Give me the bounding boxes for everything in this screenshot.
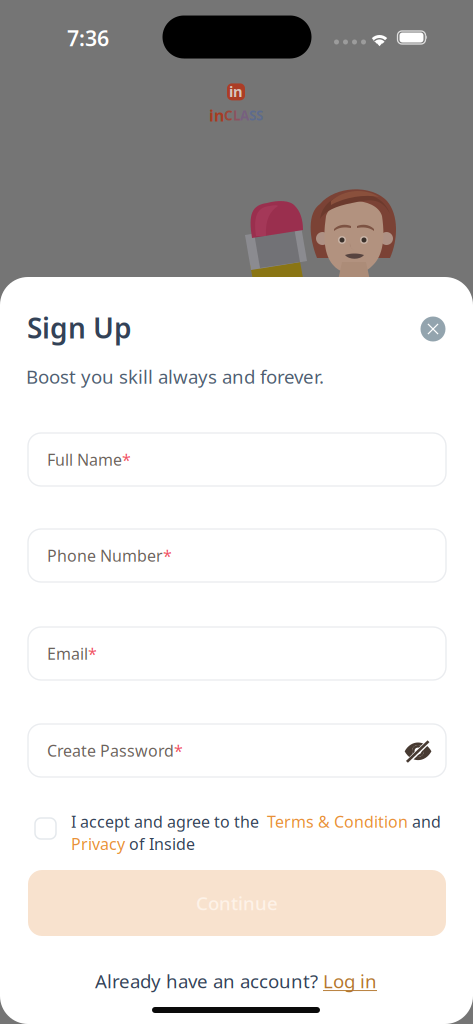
staticText: 7:36 — [67, 24, 109, 52]
staticText: A — [240, 106, 249, 124]
staticText: Email — [47, 643, 88, 664]
staticText: Continue — [196, 891, 278, 915]
button[interactable]: Phone Number — [28, 529, 446, 582]
button[interactable]: Continue — [28, 870, 446, 936]
staticText: C — [224, 106, 233, 124]
staticText: * — [163, 545, 172, 566]
staticText: SS — [249, 106, 263, 124]
staticText: of Inside — [125, 833, 195, 854]
staticText: * — [122, 449, 131, 470]
staticText: and — [408, 811, 441, 832]
button[interactable]: Log in — [323, 969, 377, 993]
staticText: * — [88, 643, 97, 664]
staticText: Full Name — [47, 449, 122, 470]
staticText: Boost you skill always and forever. — [26, 364, 324, 389]
staticText: Privacy — [71, 833, 125, 854]
button[interactable]: Create Password — [28, 724, 446, 777]
button[interactable]: Accept terms and conditions — [35, 818, 56, 839]
staticText: in — [209, 105, 224, 126]
button[interactable]: Privacy — [71, 833, 125, 854]
staticText: * — [174, 740, 183, 761]
staticText: I accept and agree to the — [71, 811, 267, 832]
button[interactable]: Full Name — [28, 433, 446, 486]
button[interactable]: Terms & Condition — [267, 811, 408, 832]
staticText: Log in — [323, 969, 377, 993]
staticText: Create Password — [47, 740, 174, 761]
staticText: Sign Up — [27, 309, 132, 346]
staticText: Already have an account? — [95, 969, 323, 993]
staticText: in — [229, 82, 243, 101]
staticText: Terms & Condition — [267, 811, 408, 832]
button[interactable]: Close — [413, 309, 453, 349]
button[interactable]: Email — [28, 627, 446, 680]
staticText: L — [233, 106, 240, 124]
staticText: Phone Number — [47, 545, 163, 566]
